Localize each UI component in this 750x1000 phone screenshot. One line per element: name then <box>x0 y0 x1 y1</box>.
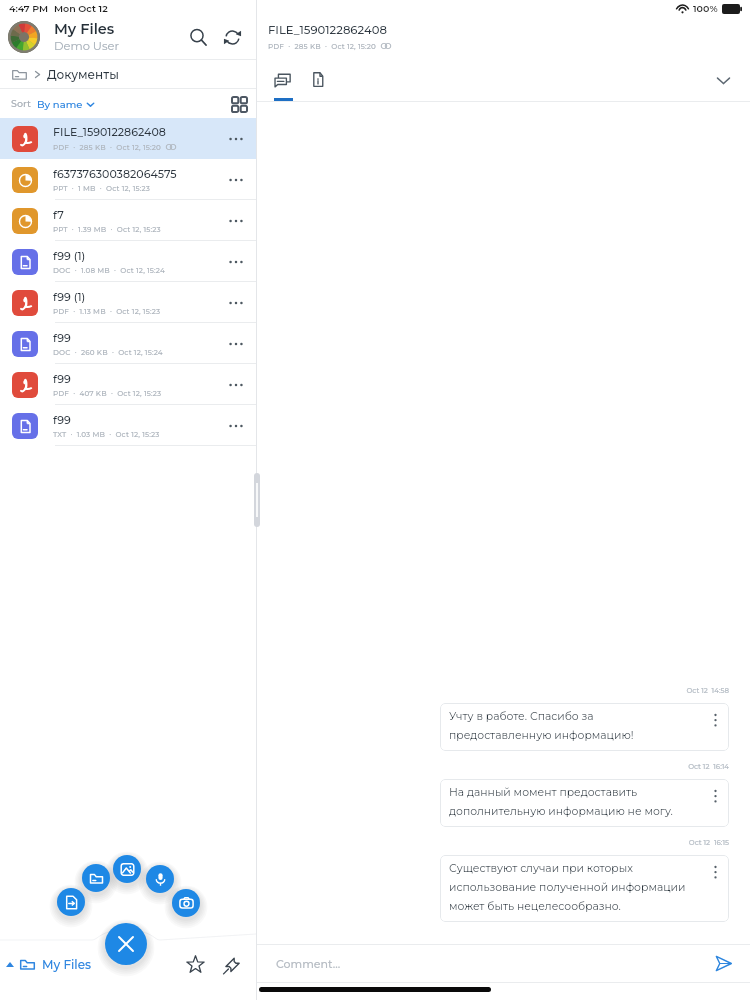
staticText: DOC · 260 KB · Oct 12, 15:24 <box>53 348 163 357</box>
button[interactable]: Resize panels <box>254 473 260 527</box>
staticText: Mon Oct 12 <box>54 3 108 15</box>
button[interactable]: f99 <box>0 364 256 405</box>
staticText: 100% <box>693 3 718 15</box>
staticText: PPT · 1 MB · Oct 12, 15:23 <box>53 184 151 193</box>
staticText: DOC · 1.08 MB · Oct 12, 15:24 <box>53 266 165 275</box>
button[interactable]: f99 (1) <box>0 241 256 282</box>
button[interactable]: FILE_1590122862408 <box>0 118 256 159</box>
button[interactable]: f99 (1) <box>0 282 256 323</box>
button[interactable]: More options <box>223 290 249 316</box>
button[interactable]: Существуют случаи при которых использова… <box>440 855 729 922</box>
button[interactable]: Учту в работе. Спасибо за предоставленну… <box>440 703 729 751</box>
staticText: f99 <box>53 413 71 426</box>
staticText: Oct 12 16:15 <box>0 838 729 847</box>
staticText: f99 <box>53 331 71 344</box>
staticText: PDF · 407 KB · Oct 12, 15:23 <box>53 389 162 398</box>
staticText: f637376300382064575 <box>53 167 177 180</box>
staticText: Oct 12 14:58 <box>0 686 729 695</box>
button[interactable]: f637376300382064575 <box>0 159 256 200</box>
staticText: FILE_1590122862408 <box>268 23 387 37</box>
staticText: Учту в работе. Спасибо за предоставленну… <box>449 710 634 742</box>
button[interactable]: My Files <box>4 951 98 978</box>
staticText: f99 (1) <box>53 290 86 303</box>
button[interactable]: Search <box>182 21 214 53</box>
button[interactable]: New folder <box>82 864 110 892</box>
button[interactable]: By name <box>37 94 95 114</box>
staticText: Существуют случаи при которых использова… <box>449 862 686 913</box>
button[interactable]: Take photo <box>172 889 200 917</box>
staticText: PDF · 285 KB · Oct 12, 15:20 <box>268 42 376 51</box>
button[interactable]: Grid view <box>227 92 251 116</box>
button[interactable]: Details tab <box>301 63 335 96</box>
staticText: 4:47 PM <box>9 3 49 15</box>
staticText: My Files <box>42 957 92 972</box>
staticText: Sort <box>11 98 31 110</box>
staticText: My Files <box>54 20 115 38</box>
button[interactable]: Collapse panel <box>710 67 736 93</box>
button[interactable]: f99 <box>0 323 256 364</box>
staticText: Oct 12 16:14 <box>0 762 729 771</box>
button[interactable]: На данный момент предоставить дополнител… <box>440 779 729 827</box>
staticText: PDF · 285 KB · Oct 12, 15:20 <box>53 143 161 152</box>
button[interactable]: More options <box>223 167 249 193</box>
staticText: f7 <box>53 208 64 221</box>
button[interactable]: Comments tab <box>265 63 299 96</box>
button[interactable]: More options <box>223 208 249 234</box>
button[interactable]: More options <box>223 126 249 152</box>
staticText: PPT · 1.39 MB · Oct 12, 15:23 <box>53 225 161 234</box>
button[interactable]: Favourites <box>180 949 210 979</box>
button[interactable]: More options <box>223 413 249 439</box>
button[interactable]: f99 <box>0 405 256 446</box>
staticText: By name <box>37 98 83 110</box>
staticText: Документы <box>47 67 119 82</box>
button[interactable]: Документы <box>11 60 256 88</box>
staticText: f99 <box>53 372 71 385</box>
button[interactable]: Send <box>708 948 738 978</box>
button[interactable]: Refresh <box>216 21 248 53</box>
button[interactable]: More options <box>223 372 249 398</box>
button[interactable]: f7 <box>0 200 256 241</box>
staticText: f99 (1) <box>53 249 86 262</box>
button[interactable]: Pinned <box>218 949 248 979</box>
staticText: TXT · 1.03 MB · Oct 12, 15:23 <box>53 430 160 439</box>
button[interactable]: Close menu <box>105 923 147 965</box>
staticText: FILE_1590122862408 <box>53 125 166 138</box>
button[interactable]: More options <box>223 249 249 275</box>
staticText: Comment... <box>276 957 341 970</box>
button[interactable]: Add image <box>113 855 141 883</box>
button[interactable]: More options <box>223 331 249 357</box>
button[interactable]: Record audio <box>146 865 174 893</box>
button[interactable]: Profile <box>8 21 40 53</box>
staticText: PDF · 1.13 MB · Oct 12, 15:23 <box>53 307 161 316</box>
staticText: На данный момент предоставить дополнител… <box>449 786 673 818</box>
button[interactable]: Import file <box>57 888 85 916</box>
staticText: Demo User <box>54 39 120 53</box>
